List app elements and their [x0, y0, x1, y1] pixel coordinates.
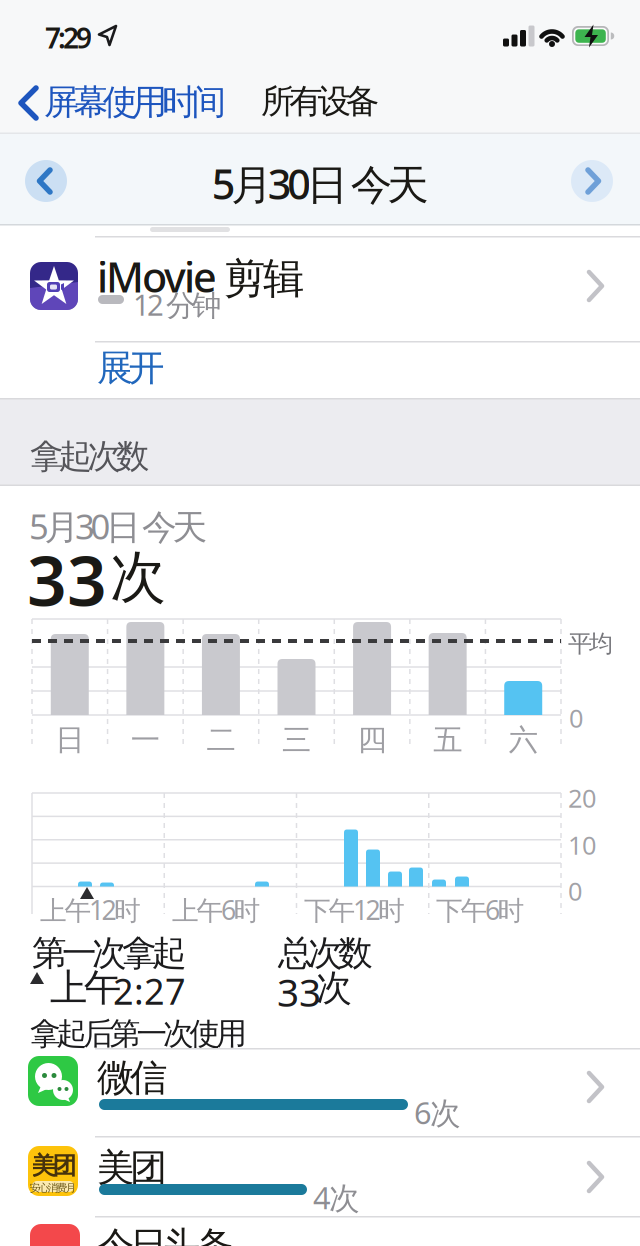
button[interactable]: 美团	[0, 1136, 640, 1216]
staticText: 五	[433, 722, 462, 758]
staticText: 屏幕使用时间	[44, 81, 226, 124]
staticText: 次	[110, 543, 166, 612]
staticText: 7:29	[45, 19, 92, 56]
button[interactable]: 返回 屏幕使用时间	[14, 83, 244, 121]
staticText: 33	[277, 966, 321, 1017]
staticText: 美团	[97, 1145, 167, 1191]
staticText: 展开	[97, 346, 164, 390]
staticText: 六	[509, 722, 538, 758]
staticText: 5月30日 今天	[212, 156, 428, 211]
button[interactable]: 今日头条	[0, 1216, 640, 1246]
staticText: 总次数	[278, 932, 373, 975]
button[interactable]: 展开	[0, 342, 640, 398]
staticText: 拿起后第一次使用	[30, 1015, 247, 1053]
staticText: 美团	[31, 1151, 76, 1180]
button[interactable]: 后一天	[571, 160, 613, 202]
staticText: 上午	[50, 965, 121, 1011]
staticText: 5月30日 今天	[29, 503, 207, 549]
staticText: 二	[206, 722, 235, 758]
staticText: iMovie 剪辑	[97, 249, 304, 304]
button[interactable]: 微信	[0, 1048, 640, 1136]
staticText: 6次	[414, 1092, 461, 1133]
staticText: 10	[568, 828, 596, 862]
staticText: 0	[568, 874, 582, 908]
button[interactable]: 前一天	[25, 160, 67, 202]
staticText: 33	[27, 533, 107, 625]
staticText: 次	[316, 966, 352, 1010]
staticText: 4次	[313, 1177, 360, 1218]
staticText: 安心消费月	[29, 1181, 76, 1195]
staticText: 下午6时	[436, 892, 524, 927]
staticText: 2:27	[113, 967, 186, 1015]
staticText: 日	[55, 722, 84, 758]
staticText: 一	[131, 722, 160, 758]
staticText: 三	[282, 722, 311, 758]
staticText: 0	[569, 701, 583, 735]
staticText: 20	[568, 781, 596, 815]
staticText: 下午12时	[304, 892, 405, 927]
staticText: 四	[358, 722, 387, 758]
staticText: 平均	[568, 629, 613, 658]
staticText: 拿起次数	[30, 436, 149, 477]
staticText: 所有设备	[261, 81, 379, 122]
staticText: 上午6时	[172, 892, 260, 927]
staticText: 第一次拿起	[32, 932, 187, 975]
button[interactable]: iMovie 剪辑	[0, 236, 640, 341]
staticText: 上午12时	[40, 892, 141, 927]
staticText: 12 分钟	[133, 285, 221, 324]
staticText: 微信	[97, 1055, 167, 1101]
staticText: 今日头条	[97, 1223, 233, 1246]
